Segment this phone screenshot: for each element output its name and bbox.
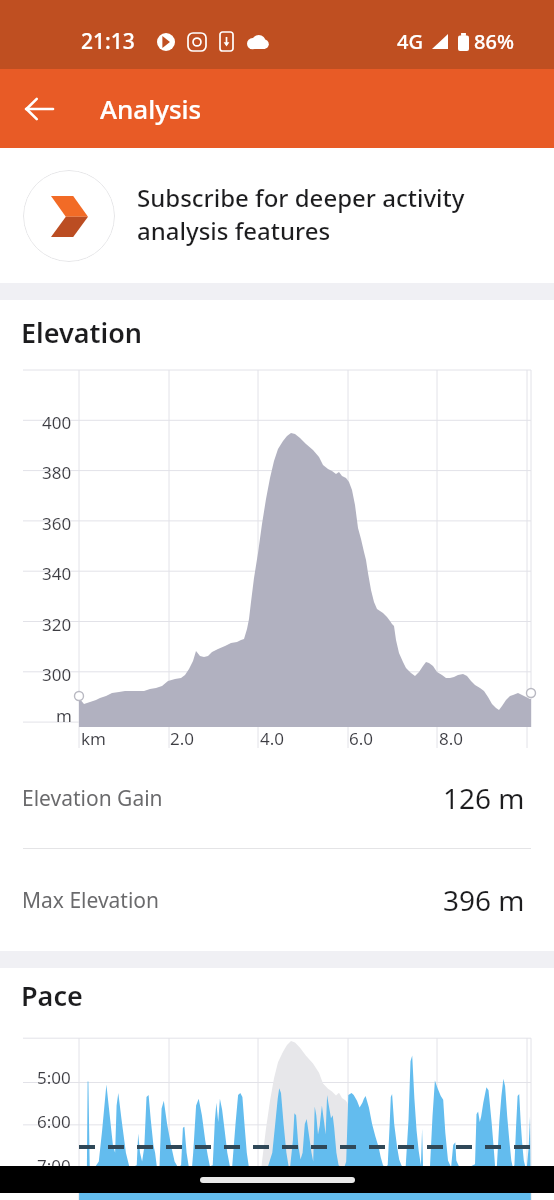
staticText: 5:00 [37, 1066, 71, 1089]
staticText: Elevation [21, 314, 143, 351]
staticText: m [56, 704, 72, 727]
staticText: 300 [42, 663, 72, 686]
staticText: 6.0 [349, 727, 374, 750]
staticText: 400 [42, 411, 72, 434]
staticText: Analysis [100, 91, 202, 126]
staticText: Elevation Gain [22, 784, 163, 813]
button[interactable]: Max Elevation [0, 849, 554, 951]
button[interactable]: Subscribe for deeper activity [0, 148, 554, 283]
staticText: 380 [42, 461, 72, 484]
staticText: Pace [21, 977, 83, 1014]
staticText: Max Elevation [22, 886, 160, 915]
staticText: 360 [42, 512, 72, 535]
staticText: 6:00 [37, 1110, 71, 1133]
staticText: 8.0 [439, 727, 464, 750]
staticText: 126 m [443, 779, 525, 817]
staticText: 4G [397, 28, 423, 55]
staticText: 320 [42, 613, 72, 636]
staticText: analysis features [137, 214, 331, 247]
staticText: 2.0 [170, 727, 195, 750]
staticText: 7:00 [37, 1154, 71, 1177]
staticText: Subscribe for deeper activity [137, 181, 465, 214]
staticText: km [81, 727, 106, 750]
staticText: 4.0 [260, 727, 285, 750]
staticText: 340 [42, 562, 72, 585]
staticText: 21:13 [81, 27, 135, 56]
button[interactable]: Elevation Gain [0, 748, 554, 848]
staticText: 86% [474, 28, 514, 55]
staticText: 396 m [443, 881, 525, 919]
button[interactable]: Back [12, 82, 66, 136]
